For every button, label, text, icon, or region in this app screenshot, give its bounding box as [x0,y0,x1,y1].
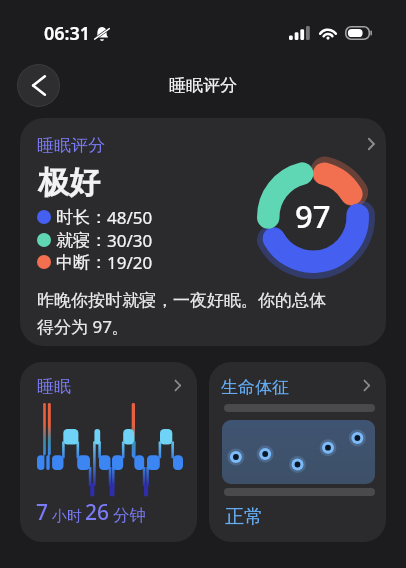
button[interactable]: Sleep details [164,372,190,398]
staticText: 分钟 [113,505,146,526]
staticText: 生命体征 [221,377,289,398]
button[interactable]: Details [358,131,384,157]
staticText: 7 [36,498,49,527]
staticText: 睡眠 [37,376,71,397]
button[interactable]: 睡眠 [20,362,197,542]
staticText: 睡眠评分 [37,135,105,156]
staticText: 中断： [56,252,107,273]
staticText: 极好 [38,163,100,202]
button[interactable]: 生命体征 [209,362,386,542]
staticText: 就寝： [56,230,107,251]
staticText: 小时 [52,507,82,526]
staticText: 06:31 [44,21,91,46]
staticText: 30/30 [107,229,153,251]
staticText: 时长： [56,207,107,228]
button[interactable]: Vitals details [353,372,379,398]
staticText: 26 [85,498,110,527]
button[interactable]: Back [17,64,60,107]
staticText: 睡眠评分 [169,75,237,96]
staticText: 昨晚你按时就寝，一夜好眠。你的总体得分为 97。 [37,290,337,338]
button[interactable]: 睡眠评分 [20,118,386,346]
staticText: 97 [295,195,331,237]
staticText: 19/20 [107,251,153,273]
staticText: 正常 [225,505,263,529]
staticText: 48/50 [107,206,153,228]
